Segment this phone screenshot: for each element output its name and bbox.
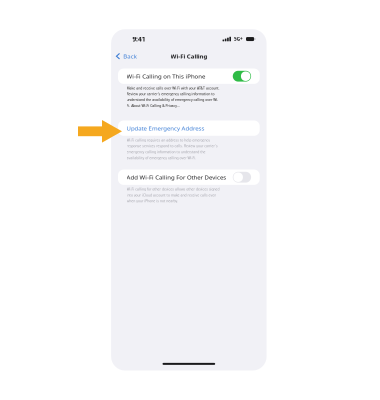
- staticText: Make and receive calls over Wi-Fi with y…: [158, 199, 380, 265]
- staticText: 9:41: [175, 45, 214, 72]
- button[interactable]: Update Emergency Address: [111, 303, 380, 349]
- staticText: Wi-Fi calling requires an address to hel…: [158, 355, 380, 400]
- button[interactable]: Back: [118, 92, 196, 128]
- staticText: Back: [148, 98, 189, 122]
- staticText: Update Emergency Address: [158, 314, 380, 338]
- staticText: Wi-Fi Calling on This iPhone: [158, 158, 380, 182]
